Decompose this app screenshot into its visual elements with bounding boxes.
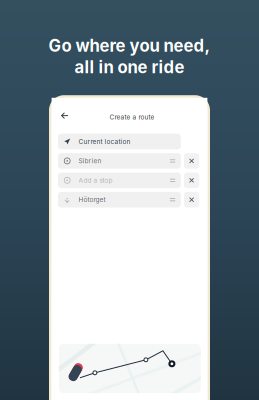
button[interactable]: Add a stop [58,172,181,188]
staticText: Go where you need, [48,35,210,56]
staticText: Hötorget [78,196,105,204]
staticText: Sibrien [78,157,101,165]
staticText: Add a stop [78,176,112,184]
staticText: Current location [78,137,130,145]
staticText: Create a route [110,113,155,121]
button[interactable]: Remove stop [184,172,199,188]
button[interactable]: Remove stop [184,153,199,169]
button[interactable]: Current location [58,134,181,149]
staticText: all in one ride [74,57,184,77]
button[interactable]: Back [58,109,72,123]
button[interactable]: Hötorget [58,192,181,207]
button[interactable]: Sibrien [58,153,181,169]
button[interactable]: Remove stop [184,192,199,207]
